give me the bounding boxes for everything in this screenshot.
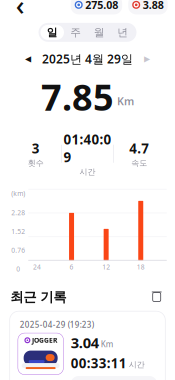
staticText: 00:33:11 [71, 354, 127, 372]
staticText: ▶ [144, 54, 150, 63]
staticText: 6 [69, 262, 73, 271]
staticText: 0 [16, 264, 20, 273]
button[interactable]: Back [7, 0, 33, 17]
staticText: 1.52 [11, 227, 25, 236]
staticText: 일 [47, 26, 58, 39]
staticText: 시간 [79, 167, 95, 177]
staticText: 275.08 [85, 0, 118, 12]
button[interactable]: 2025-04-29 (19:23) [1, 311, 174, 380]
staticText: 12 [102, 262, 110, 271]
button[interactable]: 월 [87, 25, 111, 40]
staticText: 월 [94, 26, 105, 39]
staticText: Km [101, 339, 114, 349]
staticText: ‹ [16, 0, 25, 22]
staticText: 횟수 [28, 158, 44, 168]
button[interactable]: 3.88 [128, 0, 168, 14]
button[interactable]: 주 [64, 25, 87, 40]
staticText: 2.28 [11, 208, 25, 217]
staticText: 시간 [129, 360, 145, 370]
button[interactable]: 년 [111, 25, 134, 40]
button[interactable]: Next day [141, 53, 153, 65]
staticText: Km [117, 94, 134, 108]
button[interactable]: 275.08 [71, 0, 122, 14]
staticText: JOGGER [32, 336, 57, 345]
staticText: 24 [33, 262, 41, 271]
staticText: 3.88 [143, 0, 164, 12]
staticText: 18 [137, 262, 145, 271]
button[interactable]: Delete records [149, 289, 165, 305]
staticText: 4.7 [129, 139, 149, 157]
staticText: 속도 [131, 158, 147, 168]
staticText: 3.04 [71, 333, 99, 352]
button[interactable]: 일 [40, 25, 64, 40]
staticText: 01:40:09 [63, 131, 111, 166]
staticText: 3 [32, 139, 40, 157]
staticText: 0.76 [11, 246, 25, 255]
staticText: (km) [11, 189, 25, 198]
staticText: 년 [117, 26, 128, 39]
button[interactable]: Previous day [22, 53, 34, 65]
staticText: 최근 기록 [10, 289, 66, 305]
staticText: 주 [70, 26, 81, 39]
staticText: ◀ [25, 54, 31, 63]
staticText: 2025년 4월 29일 [42, 51, 133, 67]
staticText: 7.85 [41, 73, 114, 121]
staticText: 2025-04-29 (19:23) [20, 319, 94, 330]
